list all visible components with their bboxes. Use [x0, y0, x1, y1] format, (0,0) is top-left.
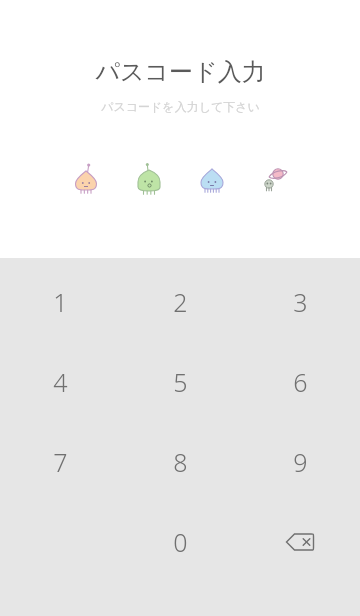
staticText: パスコードを入力して下さい	[101, 99, 260, 114]
staticText: 1	[53, 285, 68, 319]
staticText: 3	[293, 285, 308, 319]
button[interactable]: Backspace	[240, 502, 360, 582]
staticText: 7	[53, 445, 68, 479]
button[interactable]: 2	[120, 262, 240, 342]
staticText: 4	[53, 365, 68, 399]
staticText: 6	[293, 365, 308, 399]
staticText: 5	[173, 365, 188, 399]
staticText: 9	[293, 445, 308, 479]
button[interactable]: 1	[0, 262, 120, 342]
staticText: 8	[173, 445, 188, 479]
button[interactable]: 3	[240, 262, 360, 342]
button[interactable]: 9	[240, 422, 360, 502]
staticText: 2	[173, 285, 188, 319]
button[interactable]: 5	[120, 342, 240, 422]
button[interactable]: 8	[120, 422, 240, 502]
staticText: 0	[173, 525, 188, 559]
button[interactable]: 6	[240, 342, 360, 422]
button[interactable]: 7	[0, 422, 120, 502]
button[interactable]: 0	[120, 502, 240, 582]
staticText: パスコード入力	[95, 57, 266, 87]
button[interactable]: 4	[0, 342, 120, 422]
